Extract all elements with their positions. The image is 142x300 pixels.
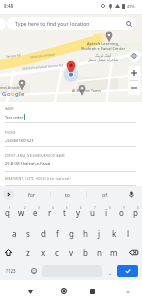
staticText: 1 xyxy=(9,206,11,210)
button[interactable]: g xyxy=(64,224,78,243)
button[interactable]: q xyxy=(0,203,14,222)
staticText: NAME xyxy=(5,107,14,111)
staticText: r xyxy=(48,207,52,218)
staticText: ?123 xyxy=(6,268,16,274)
staticText: . xyxy=(109,266,112,277)
staticText: d xyxy=(41,228,46,239)
staticText: for xyxy=(28,191,36,198)
staticText: 4 xyxy=(52,206,54,210)
button[interactable]: for xyxy=(16,187,48,202)
button[interactable]: f xyxy=(50,224,64,243)
staticText: Test order xyxy=(5,115,24,120)
button[interactable]: Type here to find your location xyxy=(7,17,136,30)
staticText: g xyxy=(69,228,74,239)
button[interactable]: v xyxy=(64,243,78,262)
staticText: l xyxy=(127,228,130,239)
other: Search xyxy=(126,21,132,27)
staticText: 7 xyxy=(94,206,96,210)
staticText: o xyxy=(119,207,124,218)
button[interactable]: z xyxy=(21,243,35,262)
staticText: y xyxy=(76,207,81,218)
staticText: 29-B OR Shahrah-e-Faisal xyxy=(5,161,51,166)
button[interactable]: Hide keyboard xyxy=(120,284,136,300)
button[interactable]: d xyxy=(36,224,50,243)
staticText: PHONE xyxy=(5,131,16,135)
button[interactable]: c xyxy=(50,243,64,262)
button[interactable]: . xyxy=(104,262,116,280)
button[interactable]: Recents xyxy=(84,283,100,299)
staticText: g xyxy=(15,90,19,98)
staticText: e xyxy=(33,207,38,218)
staticText: 5 xyxy=(66,206,68,210)
staticText: of xyxy=(102,191,107,198)
button[interactable]: x xyxy=(36,243,50,262)
button[interactable]: r xyxy=(43,203,57,222)
button[interactable]: Zoom out xyxy=(128,81,140,95)
staticText: Al-Bunnan Tower xyxy=(72,88,102,93)
staticText: j xyxy=(98,228,101,239)
staticText: 3 xyxy=(38,206,40,210)
button[interactable]: to xyxy=(52,187,84,202)
button[interactable]: m xyxy=(107,243,121,262)
button[interactable]: b xyxy=(78,243,92,262)
button[interactable]: k xyxy=(107,224,121,243)
staticText: z xyxy=(26,247,30,258)
button[interactable]: PHONE xyxy=(0,124,142,146)
staticText: i xyxy=(105,207,108,218)
staticText: o xyxy=(11,90,15,98)
button[interactable]: y xyxy=(71,203,85,222)
staticText: 8:48 xyxy=(4,3,14,9)
staticText: Shahrah-e-Faisal Service Rd xyxy=(22,63,63,71)
staticText: n xyxy=(97,247,102,258)
staticText: e xyxy=(21,90,25,98)
button[interactable]: i xyxy=(99,203,113,222)
staticText: p xyxy=(133,207,138,218)
button[interactable]: My location xyxy=(128,50,140,62)
staticText: 9 xyxy=(123,206,125,210)
button[interactable]: Backspace xyxy=(125,243,142,262)
button[interactable]: a xyxy=(7,224,21,243)
staticText: w xyxy=(18,207,25,218)
staticText: Aptech Learning, Shahrah e Faisal Center xyxy=(76,41,130,51)
button[interactable]: l xyxy=(121,224,135,243)
staticText: to xyxy=(65,191,71,198)
button[interactable]: u xyxy=(85,203,99,222)
button[interactable]: j xyxy=(92,224,106,243)
button[interactable]: STREET, AREA, NEIGHBOURHOOD NAME xyxy=(0,148,142,171)
button[interactable]: of xyxy=(88,187,120,202)
staticText: +923001831621 xyxy=(5,138,34,143)
button[interactable]: h xyxy=(78,224,92,243)
button[interactable]: e xyxy=(28,203,42,222)
staticText: G xyxy=(2,90,7,98)
staticText: m xyxy=(110,247,118,258)
staticText: 8 xyxy=(109,206,111,210)
staticText: f xyxy=(56,228,59,239)
button[interactable]: p xyxy=(128,203,142,222)
button[interactable]: s xyxy=(21,224,35,243)
staticText: ness Arcade xyxy=(0,85,20,90)
button[interactable]: t xyxy=(57,203,71,222)
button[interactable]: w xyxy=(14,203,28,222)
staticText: a xyxy=(12,228,17,239)
button[interactable]: Enter xyxy=(117,265,138,277)
button[interactable]: ?123 xyxy=(0,262,22,280)
staticText: Type here to find your location xyxy=(15,20,90,27)
button[interactable]: Home xyxy=(56,283,72,299)
staticText: o xyxy=(7,90,11,98)
button[interactable]: n xyxy=(92,243,106,262)
button[interactable]: More suggestions xyxy=(3,189,14,200)
staticText: Service Rd xyxy=(6,53,21,59)
button[interactable]: Zoom in xyxy=(128,66,140,80)
button[interactable]: Emoji xyxy=(27,262,41,280)
button[interactable]: o xyxy=(114,203,128,222)
button[interactable]: Shift xyxy=(0,243,17,262)
button[interactable]: NAME xyxy=(0,102,142,122)
staticText: 2 xyxy=(24,206,26,210)
staticText: Shahrah-e-Faisal xyxy=(30,52,55,59)
button[interactable]: APARTMENT, SUITE, HOUSE # etc (optional) xyxy=(0,172,142,186)
staticText: l xyxy=(19,90,21,98)
button[interactable]: Voice input xyxy=(124,187,138,201)
staticText: s xyxy=(26,228,30,239)
button[interactable]: Back xyxy=(22,284,38,300)
